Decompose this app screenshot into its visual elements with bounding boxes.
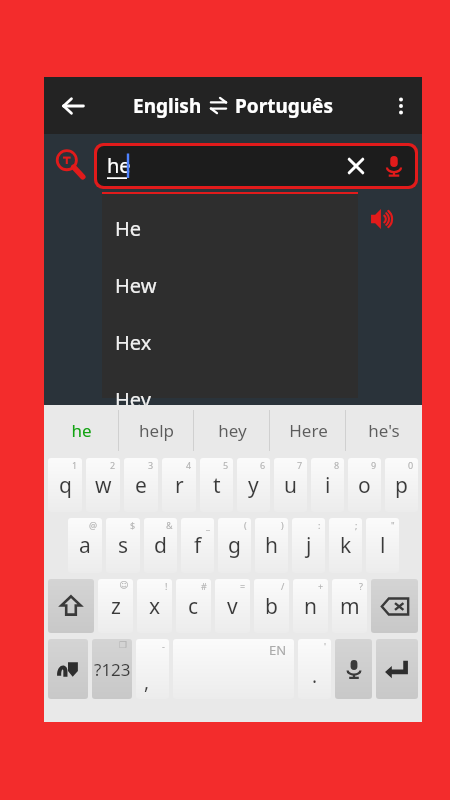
staticText: Português [235,93,334,119]
button[interactable]: # [176,579,211,633]
button[interactable]: _ [181,518,214,573]
staticText: z [111,592,121,621]
staticText: 2 [110,459,116,471]
staticText: ; [355,519,358,531]
button[interactable]: Hew [102,259,358,311]
button[interactable]: Clear [339,149,373,183]
staticText: b [265,592,278,621]
button[interactable]: 2 [86,458,120,512]
staticText: ! [165,580,168,592]
staticText: help [139,419,174,442]
staticText: g [228,531,241,560]
staticText: n [304,592,317,621]
staticText: 3 [148,459,154,471]
staticText: ❐ [119,640,128,650]
button[interactable]: ) [255,518,288,573]
button[interactable]: 5 [200,458,233,512]
button[interactable]: 3 [124,458,158,512]
button[interactable]: $ [106,518,140,573]
button[interactable]: Speak [360,196,406,242]
staticText: 0 [408,459,414,471]
button[interactable]: he [97,146,415,186]
staticText: he [71,419,92,442]
staticText: _ [206,519,210,531]
button[interactable]: ' [298,639,331,699]
staticText: ( [244,519,247,531]
button[interactable]: ; [329,518,362,573]
button[interactable]: 8 [311,458,344,512]
staticText: he [107,152,131,179]
staticText: = [240,580,246,592]
staticText: English [133,93,202,119]
staticText: Hew [115,272,157,299]
staticText: EN [269,641,287,659]
button[interactable]: Space [173,639,294,699]
button[interactable]: 6 [237,458,270,512]
button[interactable]: ❐ [92,639,132,699]
staticText: # [201,580,207,592]
button[interactable]: hey [194,405,270,455]
button[interactable]: 4 [162,458,196,512]
staticText: k [340,531,352,560]
button[interactable]: Here [270,405,346,455]
button[interactable]: 0 [385,458,418,512]
staticText: y [248,471,259,500]
staticText: $ [130,519,136,531]
staticText: . [312,663,318,689]
button[interactable]: Search [48,142,92,186]
staticText: He [115,215,142,242]
button[interactable]: & [144,518,177,573]
staticText: i [325,471,331,500]
staticText: t [213,471,221,500]
staticText: v [227,592,238,621]
button[interactable]: he [44,405,119,455]
button[interactable]: @ [68,518,102,573]
staticText: x [149,592,161,621]
button[interactable]: ? [332,579,367,633]
button[interactable]: ! [137,579,172,633]
button[interactable]: - [136,639,169,699]
button[interactable]: Switch language [48,639,88,699]
button[interactable]: Enter [376,639,418,699]
staticText: 8 [334,459,340,471]
staticText: hey [218,419,247,442]
button[interactable]: More options [380,85,422,127]
button[interactable]: = [215,579,250,633]
staticText: @ [89,519,98,531]
button[interactable]: Hex [102,316,358,368]
button[interactable]: / [254,579,289,633]
staticText: he's [368,419,400,442]
button[interactable]: he's [346,405,422,455]
staticText: + [318,580,324,592]
button[interactable]: 1 [48,458,82,512]
button[interactable]: 7 [274,458,307,512]
staticText: / [281,580,285,592]
staticText: : [318,519,321,531]
staticText: " [391,519,395,531]
button[interactable]: Hey [102,373,358,425]
button[interactable]: Backspace [371,579,418,633]
button[interactable]: 9 [348,458,381,512]
staticText: ☺ [119,580,129,590]
button[interactable]: English [44,77,422,134]
staticText: s [118,531,129,560]
button[interactable]: help [119,405,194,455]
button[interactable]: : [292,518,325,573]
button[interactable]: Voice input [335,639,372,699]
staticText: u [284,471,297,500]
staticText: f [194,531,202,560]
button[interactable]: Back [52,85,94,127]
button[interactable]: Voice input [377,149,411,183]
button[interactable]: Shift [48,579,94,633]
staticText: h [265,531,278,560]
staticText: Here [289,419,328,442]
staticText: ' [324,640,327,652]
button[interactable]: " [366,518,399,573]
staticText: 9 [371,459,377,471]
button[interactable]: ☺ [98,579,133,633]
button[interactable]: ( [218,518,251,573]
button[interactable]: He [102,202,358,254]
button[interactable]: + [293,579,328,633]
staticText: 4 [186,459,192,471]
staticText: m [340,592,360,621]
